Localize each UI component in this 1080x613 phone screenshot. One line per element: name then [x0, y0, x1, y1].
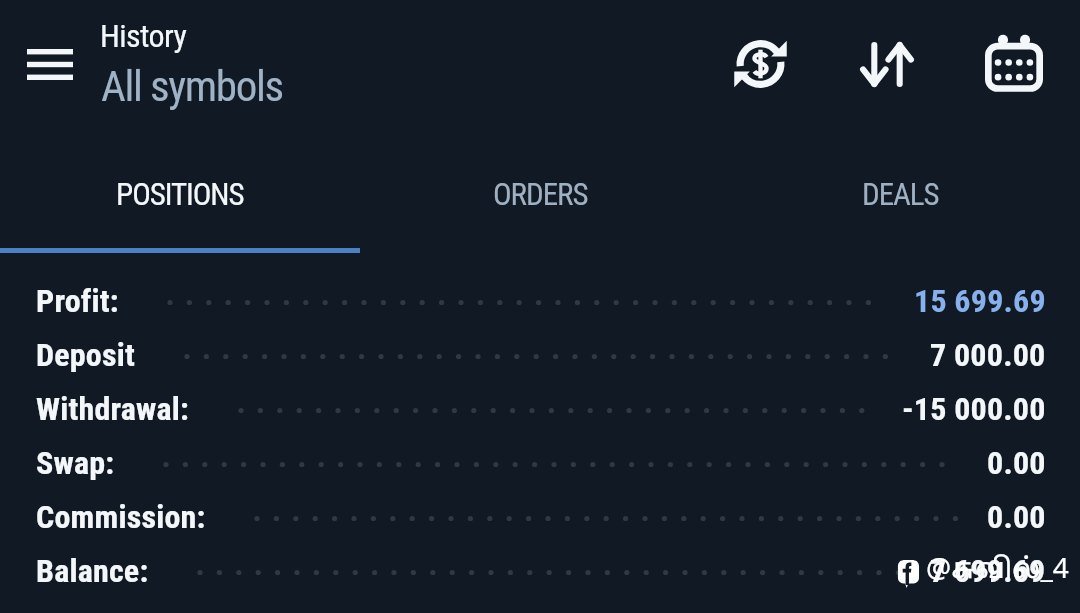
button[interactable]: POSITIONS — [0, 176, 360, 256]
button[interactable]: Menu — [14, 33, 86, 96]
button[interactable]: Deposit — [0, 328, 1080, 382]
staticText: 0.00 — [987, 444, 1046, 482]
button[interactable]: Calendar — [974, 24, 1054, 104]
staticText: ORDERS — [493, 176, 588, 212]
staticText: @சுவில்_4 — [926, 554, 1069, 589]
staticText: Commission: — [36, 498, 206, 536]
button[interactable]: Profit: — [0, 274, 1080, 328]
staticText: Balance: — [36, 552, 149, 590]
staticText: 0.00 — [987, 498, 1046, 536]
staticText: History — [100, 17, 187, 55]
button[interactable]: DEALS — [720, 176, 1080, 256]
button[interactable]: ORDERS — [360, 176, 720, 256]
staticText: 15 699.69 — [914, 282, 1046, 320]
staticText: 7 000.00 — [930, 336, 1046, 374]
staticText: DEALS — [862, 176, 939, 212]
button[interactable]: Swap: — [0, 436, 1080, 490]
button[interactable]: Commission: — [0, 490, 1080, 544]
button[interactable]: Withdrawal: — [0, 382, 1080, 436]
staticText: Withdrawal: — [36, 390, 190, 428]
staticText: POSITIONS — [116, 176, 244, 212]
button[interactable]: Balance: — [0, 544, 1080, 598]
staticText: Swap: — [36, 444, 115, 482]
staticText: Deposit — [36, 336, 136, 374]
staticText: 7 699.69 — [930, 552, 1046, 590]
button[interactable]: Sort — [847, 24, 927, 104]
staticText: All symbols — [101, 61, 283, 111]
staticText: -15 000.00 — [902, 390, 1046, 428]
staticText: Profit: — [36, 282, 119, 320]
button[interactable]: Currency exchange — [720, 24, 800, 104]
